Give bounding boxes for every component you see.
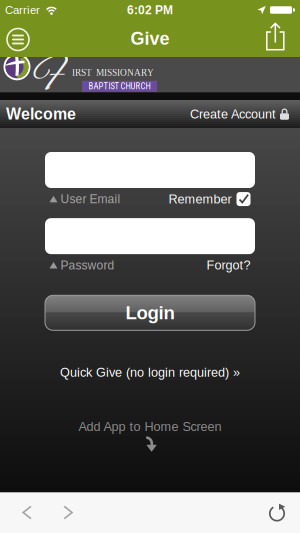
- staticText: F: [34, 47, 63, 106]
- staticText: Forgot?: [206, 258, 250, 272]
- button[interactable]: Reload: [268, 493, 300, 531]
- button[interactable]: Remember: [168, 192, 250, 206]
- staticText: BAPTIST CHURCH: [88, 81, 150, 91]
- staticText: IRST MISSIONARY: [72, 67, 154, 78]
- button[interactable]: Forgot?: [206, 258, 250, 272]
- staticText: Password: [60, 258, 114, 272]
- staticText: Remember: [168, 192, 231, 206]
- staticText: Create Account: [190, 107, 276, 121]
- button[interactable]: Login: [45, 295, 255, 330]
- staticText: Carrier: [5, 4, 40, 16]
- staticText: 6:02 PM: [127, 3, 173, 17]
- button[interactable]: Back: [0, 493, 32, 531]
- button[interactable]: Menu: [0, 20, 31, 56]
- staticText: Give: [130, 28, 169, 48]
- button[interactable]: Create Account: [190, 107, 300, 121]
- staticText: Welcome: [6, 105, 76, 123]
- button[interactable]: Share: [266, 20, 300, 56]
- staticText: Add App to Home Screen: [78, 419, 221, 434]
- staticText: Login: [125, 302, 174, 323]
- button[interactable]: Quick Give (no login required) »: [60, 365, 240, 379]
- staticText: Quick Give (no login required) »: [60, 365, 240, 379]
- button[interactable]: Forward: [32, 493, 73, 531]
- staticText: User Email: [60, 192, 120, 206]
